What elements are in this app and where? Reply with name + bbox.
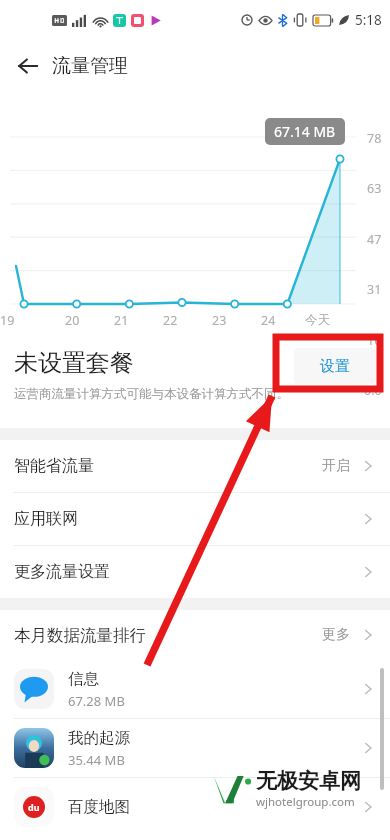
staticText: 我的起源 — [68, 728, 130, 748]
button[interactable]: 更多流量设置 — [0, 546, 390, 598]
staticText: 智能省流量 — [14, 456, 94, 476]
staticText: 16 — [367, 332, 382, 349]
button[interactable]: 设置 — [294, 348, 376, 384]
staticText: 31 — [367, 281, 382, 298]
staticText: 流量管理 — [52, 54, 128, 78]
staticText: 开启 — [322, 457, 350, 475]
button[interactable]: 智能省流量 — [0, 440, 390, 492]
staticText: 5:18 — [355, 11, 382, 29]
staticText: 0.0 — [364, 382, 382, 399]
staticText: 应用联网 — [14, 509, 78, 529]
staticText: 更多 — [322, 626, 350, 644]
staticText: 63 — [367, 180, 382, 197]
staticText: 无极安卓网 — [256, 768, 361, 794]
staticText: 21 — [114, 312, 129, 329]
staticText: 47 — [367, 231, 382, 248]
staticText: 22 — [163, 312, 178, 329]
staticText: 19 — [0, 312, 15, 329]
staticText: 67.14 MB — [274, 122, 336, 141]
button[interactable]: 信息 — [0, 660, 390, 718]
staticText: 78 — [367, 130, 382, 147]
staticText: 更多流量设置 — [14, 562, 110, 582]
staticText: 35.44 MB — [68, 751, 125, 769]
staticText: 67.28 MB — [68, 692, 125, 710]
button[interactable]: 我的起源 — [0, 719, 390, 777]
button[interactable]: 本月数据流量排行 — [0, 610, 390, 660]
staticText: 百度地图 — [68, 797, 130, 817]
staticText: 信息 — [68, 669, 99, 689]
staticText: 今天 — [305, 312, 330, 328]
staticText: 设置 — [320, 357, 350, 376]
staticText: wjhotelgroup.com — [256, 794, 355, 810]
staticText: 本月数据流量排行 — [14, 625, 146, 646]
button[interactable]: 应用联网 — [0, 493, 390, 545]
staticText: 20 — [65, 312, 80, 329]
button[interactable]: Back — [6, 44, 50, 88]
staticText: du — [28, 801, 40, 813]
staticText: 运营商流量计算方式可能与本设备计算方式不同。 — [14, 386, 289, 402]
button[interactable]: du — [0, 778, 390, 836]
staticText: 24 — [261, 312, 276, 329]
staticText: 未设置套餐 — [14, 348, 134, 378]
staticText: 23 — [212, 312, 227, 329]
